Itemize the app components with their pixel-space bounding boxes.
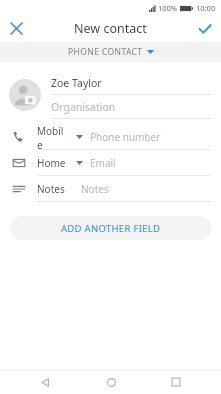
button[interactable]: Add photo xyxy=(9,79,41,111)
button[interactable]: Back xyxy=(25,370,65,394)
staticText: Notes xyxy=(37,182,65,196)
button[interactable]: PHONE CONTACT xyxy=(0,42,221,62)
staticText: Phone number xyxy=(90,130,161,144)
button[interactable]: ADD ANOTHER FIELD xyxy=(10,216,211,240)
staticText: New contact xyxy=(74,20,147,37)
button[interactable]: Save xyxy=(189,15,221,42)
staticText: Organisation xyxy=(51,100,116,114)
button[interactable]: Cancel xyxy=(0,15,32,42)
staticText: 100% xyxy=(158,3,178,13)
button[interactable]: Mobile xyxy=(0,124,221,150)
staticText: Email xyxy=(90,156,116,170)
button[interactable]: Recent apps xyxy=(156,370,196,394)
button[interactable]: Notes xyxy=(0,176,221,202)
button[interactable]: Home xyxy=(91,370,131,394)
staticText: 10:00 xyxy=(196,3,216,13)
button[interactable]: Zoe Taylor xyxy=(51,72,211,94)
staticText: ADD ANOTHER FIELD xyxy=(61,222,161,235)
button[interactable]: Organisation xyxy=(51,96,211,118)
staticText: Mobile xyxy=(37,124,69,149)
staticText: PHONE CONTACT xyxy=(68,46,143,58)
button[interactable]: Home xyxy=(0,150,221,176)
staticText: Zoe Taylor xyxy=(51,76,102,90)
staticText: Notes xyxy=(81,182,109,196)
staticText: Home xyxy=(37,156,66,170)
